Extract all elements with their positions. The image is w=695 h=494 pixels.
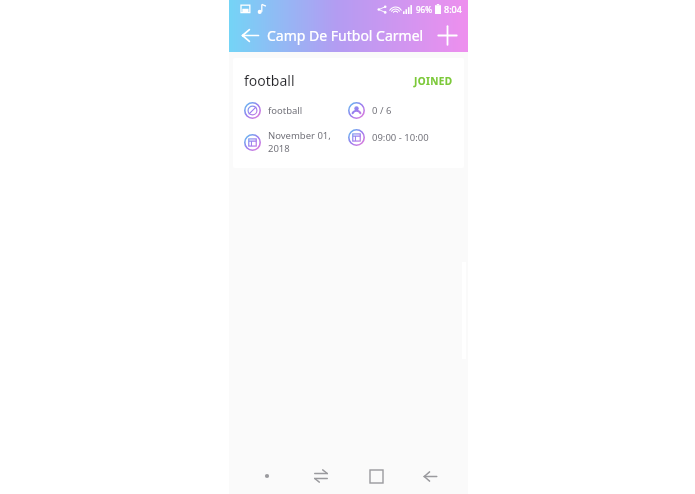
staticText: football (244, 71, 295, 90)
button[interactable]: Add (430, 18, 464, 52)
button[interactable]: Back (413, 459, 447, 493)
button[interactable]: Menu (250, 459, 284, 493)
button[interactable]: Home (359, 459, 393, 493)
button[interactable]: Recent apps (304, 459, 338, 493)
staticText: 8:04 (444, 3, 462, 15)
staticText: football (268, 104, 303, 117)
staticText: Camp De Futbol Carmel (267, 26, 424, 45)
button[interactable]: football (233, 58, 464, 168)
staticText: 0 / 6 (372, 104, 392, 117)
staticText: 96% (416, 4, 432, 15)
staticText: 09:00 - 10:00 (372, 131, 429, 144)
staticText: JOINED (414, 74, 453, 88)
staticText: November 01, 2018 (268, 129, 348, 155)
button[interactable]: Back (233, 18, 267, 52)
